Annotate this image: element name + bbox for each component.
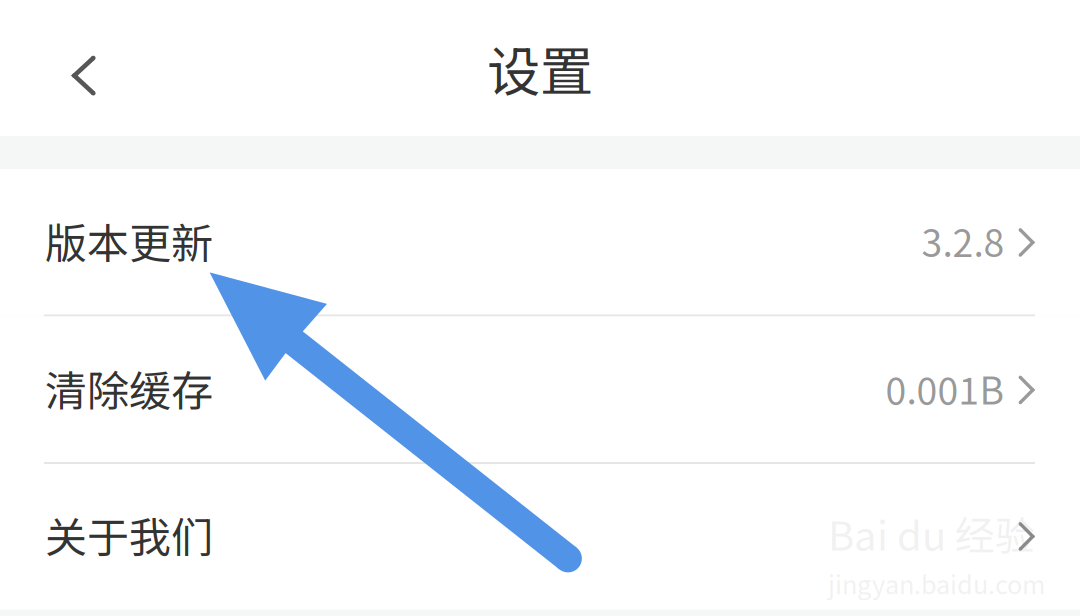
staticText: 设置 xyxy=(487,29,593,107)
staticText: 清除缓存 xyxy=(45,358,213,419)
staticText: 0.001B xyxy=(886,361,1005,415)
staticText: 关于我们 xyxy=(45,504,213,565)
staticText: 3.2.8 xyxy=(922,214,1005,268)
button[interactable]: 版本更新 xyxy=(0,169,1080,314)
button[interactable]: Back xyxy=(0,0,123,136)
button[interactable]: 清除缓存 xyxy=(0,316,1080,462)
button[interactable]: Bai du 经验 xyxy=(0,464,1080,609)
staticText: 版本更新 xyxy=(45,210,213,271)
staticText: Bai du 经验 xyxy=(828,504,1035,562)
staticText: jingyan.baidu.com xyxy=(828,565,1045,602)
